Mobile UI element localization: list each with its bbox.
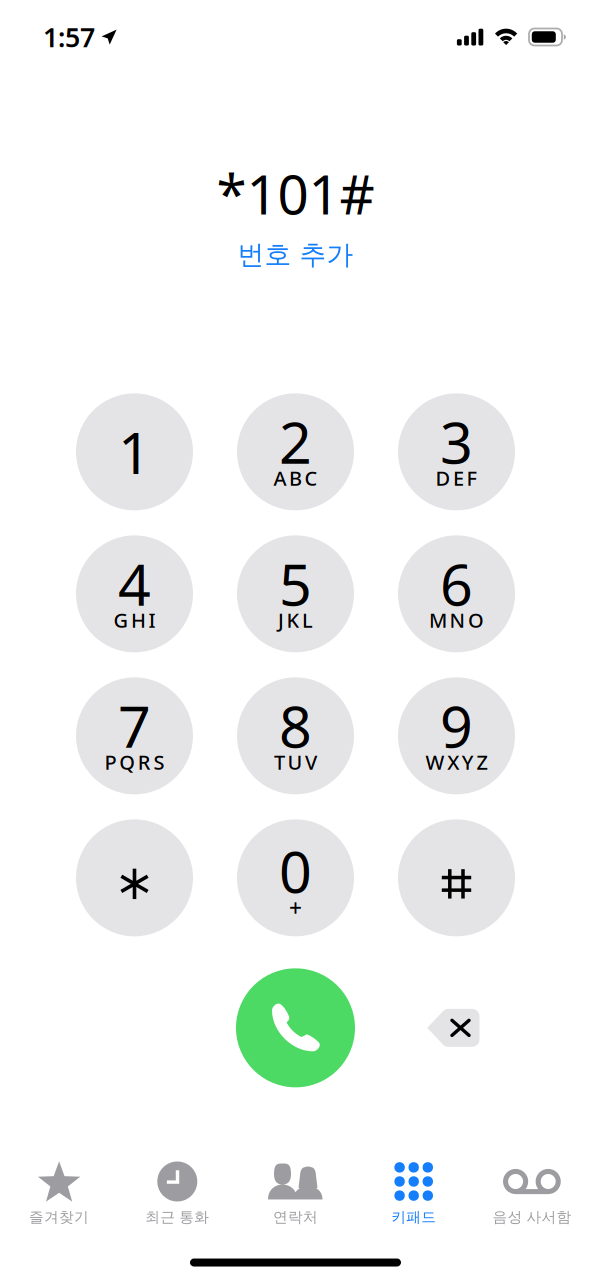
button[interactable]: Delete (355, 986, 514, 1069)
staticText: 6 (440, 545, 473, 622)
staticText: 3 (440, 403, 473, 480)
button[interactable]: 연락처 (236, 1161, 355, 1226)
staticText: 번호 추가 (237, 239, 353, 271)
staticText: *101# (216, 157, 374, 230)
staticText: WXYZ (426, 749, 487, 775)
staticText: 9 (440, 687, 473, 764)
button[interactable]: 2 (237, 393, 354, 510)
staticText: 0 (279, 833, 312, 909)
button[interactable] (398, 819, 515, 936)
button[interactable]: 0 (237, 819, 354, 936)
button[interactable]: 3 (398, 393, 515, 510)
button[interactable]: Call (236, 968, 355, 1087)
staticText: 최근 통화 (145, 1208, 209, 1226)
button[interactable]: 8 (237, 677, 354, 794)
staticText: TUV (274, 749, 317, 775)
staticText: 2 (279, 403, 312, 480)
staticText: 키패드 (391, 1208, 436, 1226)
button[interactable]: 4 (76, 535, 193, 652)
button[interactable]: 7 (76, 677, 193, 794)
button[interactable]: 1 (76, 393, 193, 510)
staticText: 1:57 (43, 19, 95, 55)
button[interactable]: 번호 추가 (227, 230, 363, 275)
staticText: MNO (429, 607, 484, 633)
staticText: 연락처 (273, 1208, 318, 1226)
staticText: 음성 사서함 (492, 1208, 571, 1226)
button[interactable]: 키패드 (355, 1161, 473, 1226)
button[interactable]: 9 (398, 677, 515, 794)
staticText: + (289, 893, 302, 923)
staticText: 5 (279, 545, 312, 622)
staticText: DEF (435, 465, 478, 491)
staticText: ABC (273, 465, 318, 491)
staticText: GHI (113, 607, 156, 633)
button[interactable]: 즐겨찾기 (0, 1161, 118, 1226)
button[interactable]: 최근 통화 (118, 1161, 236, 1226)
staticText: PQRS (105, 749, 164, 775)
button[interactable]: 5 (237, 535, 354, 652)
button[interactable]: 음성 사서함 (473, 1161, 591, 1226)
staticText: JKL (278, 607, 313, 633)
staticText: 1 (118, 414, 151, 490)
staticText: 7 (118, 687, 151, 764)
button[interactable]: 6 (398, 535, 515, 652)
staticText: 즐겨찾기 (29, 1208, 89, 1226)
staticText: 8 (279, 687, 312, 764)
button[interactable] (76, 819, 193, 936)
staticText: 4 (118, 545, 151, 622)
